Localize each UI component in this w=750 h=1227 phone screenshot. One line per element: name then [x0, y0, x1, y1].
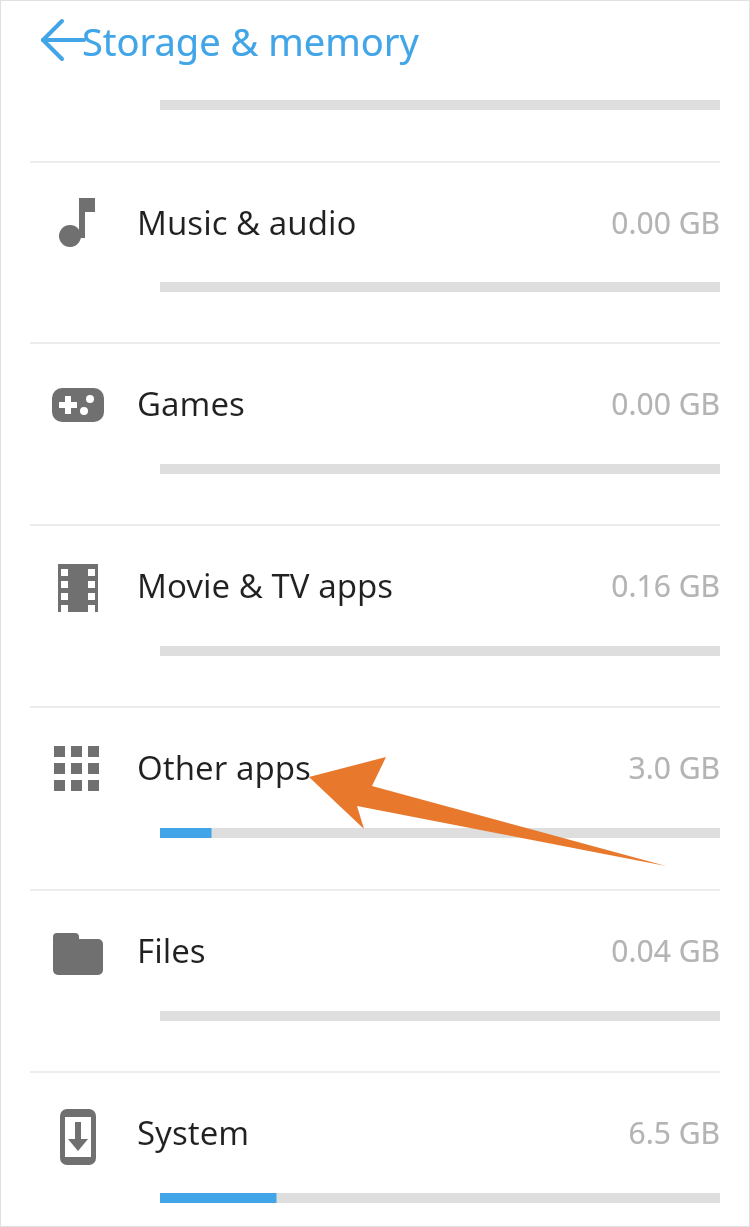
button[interactable]: Games: [0, 343, 750, 524]
staticText: System: [137, 1110, 250, 1155]
button[interactable]: Movie & TV apps: [0, 525, 750, 706]
staticText: 0.00 GB: [0, 383, 720, 424]
staticText: 0.16 GB: [0, 565, 720, 606]
button[interactable]: Other apps: [0, 707, 750, 888]
staticText: 3.0 GB: [0, 747, 720, 788]
staticText: Storage & memory: [82, 15, 419, 67]
button[interactable]: Files: [0, 890, 750, 1071]
button[interactable]: Back: [0, 0, 82, 82]
staticText: Other apps: [137, 745, 311, 790]
staticText: Movie & TV apps: [137, 563, 394, 608]
staticText: Music & audio: [137, 200, 357, 245]
button[interactable]: Music & audio: [0, 162, 750, 343]
staticText: Files: [137, 928, 206, 973]
staticText: 6.5 GB: [0, 1112, 720, 1153]
staticText: 0.04 GB: [0, 930, 720, 971]
staticText: Games: [137, 381, 245, 426]
staticText: 0.00 GB: [0, 202, 720, 243]
button[interactable]: System: [0, 1072, 750, 1227]
